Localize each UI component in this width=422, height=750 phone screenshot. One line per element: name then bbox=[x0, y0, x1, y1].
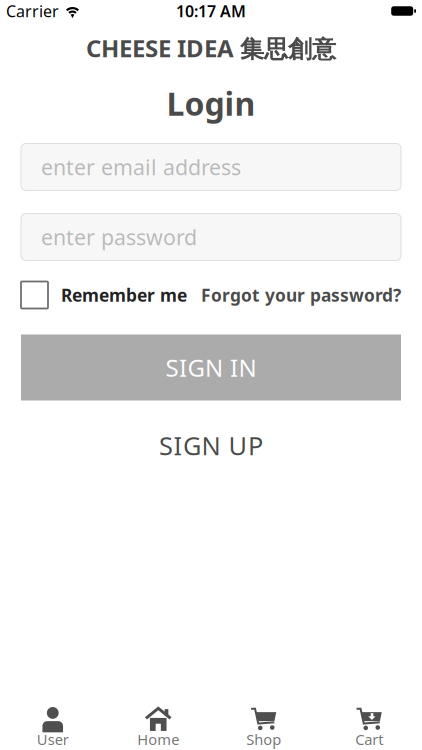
staticText: Forgot your password? bbox=[201, 283, 401, 306]
button[interactable]: enter email address bbox=[21, 143, 401, 190]
button[interactable]: SIGN UP bbox=[159, 428, 263, 462]
button[interactable]: enter password bbox=[21, 213, 401, 260]
staticText: Carrier bbox=[6, 0, 59, 22]
button[interactable]: User bbox=[0, 702, 105, 749]
button[interactable]: SIGN IN bbox=[21, 334, 401, 400]
button[interactable]: Forgot your password? bbox=[201, 283, 401, 306]
button[interactable]: Home bbox=[105, 702, 211, 749]
staticText: enter email address bbox=[41, 153, 241, 181]
staticText: Cart bbox=[355, 729, 383, 749]
staticText: CHEESE IDEA 集思創意 bbox=[86, 32, 336, 64]
staticText: Login bbox=[166, 82, 255, 124]
button[interactable]: Remember me bbox=[21, 281, 187, 308]
button[interactable]: Cart bbox=[316, 702, 422, 749]
staticText: enter password bbox=[41, 223, 197, 251]
staticText: User bbox=[37, 729, 69, 749]
staticText: SIGN UP bbox=[159, 428, 263, 462]
staticText: Home bbox=[137, 729, 179, 749]
staticText: 10:17 AM bbox=[176, 0, 246, 22]
staticText: Remember me bbox=[61, 283, 187, 306]
staticText: SIGN IN bbox=[165, 352, 256, 383]
button[interactable]: Shop bbox=[211, 702, 316, 749]
staticText: Shop bbox=[246, 729, 281, 749]
